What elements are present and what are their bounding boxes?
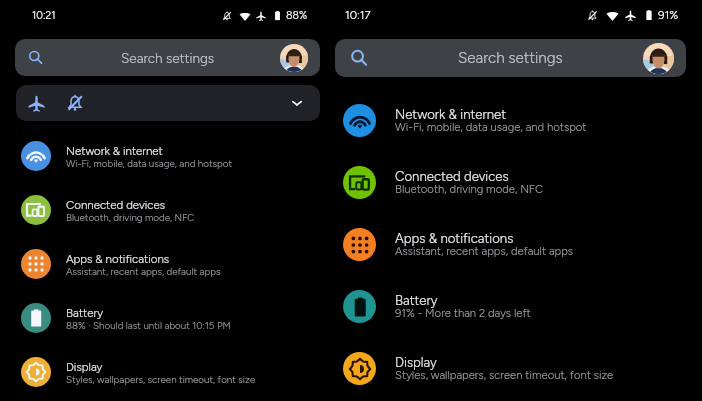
button[interactable]: Connected devices <box>0 183 330 237</box>
button[interactable]: Search settings <box>335 39 686 77</box>
staticText: Display <box>66 360 103 374</box>
button[interactable]: Network & internet <box>330 89 702 151</box>
staticText: Apps & notifications <box>395 230 514 246</box>
staticText: Apps & notifications <box>66 252 170 266</box>
staticText: Styles, wallpapers, screen timeout, font… <box>66 374 256 386</box>
staticText: Display <box>395 354 437 370</box>
staticText: Network & internet <box>395 106 507 122</box>
button[interactable]: Account <box>280 44 308 72</box>
button[interactable]: Battery <box>0 291 330 345</box>
button[interactable]: Expand <box>290 96 304 110</box>
staticText: Bluetooth, driving mode, NFC <box>395 182 544 196</box>
staticText: 88% <box>286 9 308 22</box>
button[interactable]: Apps & notifications <box>0 237 330 291</box>
button[interactable]: Display <box>330 337 702 399</box>
staticText: Wi-Fi, mobile, data usage, and hotspot <box>66 158 233 170</box>
staticText: Assistant, recent apps, default apps <box>66 266 221 278</box>
button[interactable]: Account <box>643 43 674 74</box>
button[interactable]: Search settings <box>15 39 320 76</box>
staticText: Battery <box>395 292 438 308</box>
staticText: Styles, wallpapers, screen timeout, font… <box>395 368 614 382</box>
staticText: Battery <box>66 306 104 320</box>
staticText: Assistant, recent apps, default apps <box>395 244 574 258</box>
staticText: Connected devices <box>395 168 509 184</box>
button[interactable]: Display <box>0 345 330 399</box>
button[interactable]: Airplane mode <box>28 95 45 112</box>
staticText: Bluetooth, driving mode, NFC <box>66 212 195 224</box>
staticText: Network & internet <box>66 144 163 158</box>
staticText: 10:17 <box>345 8 371 22</box>
staticText: Search settings <box>458 49 563 67</box>
staticText: 91% <box>658 8 679 22</box>
staticText: Wi-Fi, mobile, data usage, and hotspot <box>395 120 587 134</box>
staticText: 88% · Should last until about 10:15 PM <box>66 320 231 332</box>
button[interactable]: Network & internet <box>0 129 330 183</box>
button[interactable]: Apps & notifications <box>330 213 702 275</box>
staticText: Search settings <box>121 50 215 66</box>
button[interactable]: Mute <box>66 94 84 112</box>
button[interactable]: Connected devices <box>330 151 702 213</box>
button[interactable]: Airplane mode <box>16 85 320 121</box>
staticText: 10:21 <box>32 9 56 22</box>
staticText: Connected devices <box>66 198 166 212</box>
button[interactable]: Battery <box>330 275 702 337</box>
staticText: 91% - More than 2 days left <box>395 306 531 320</box>
